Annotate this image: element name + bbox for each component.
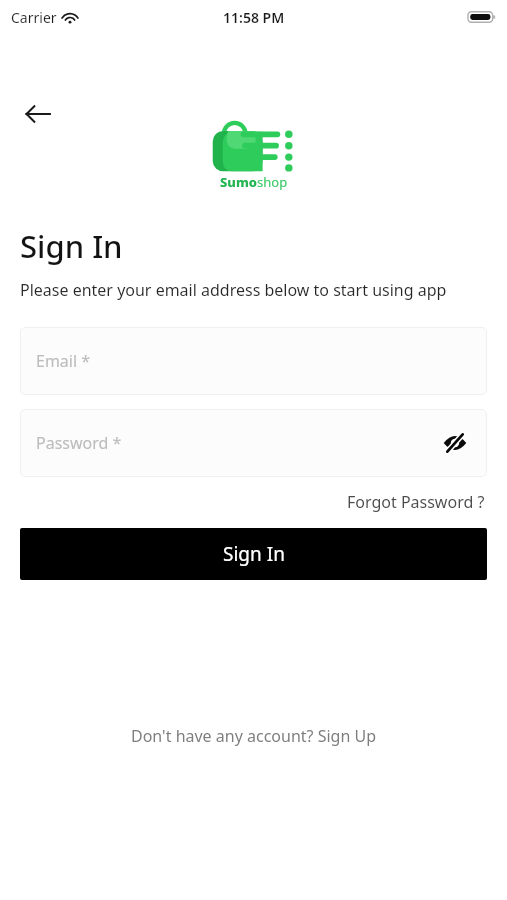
staticText: 11:58 PM [223,8,285,27]
staticText: Sign In [20,225,123,267]
button[interactable]: Show password [440,428,470,458]
button[interactable]: Sign In [20,528,487,580]
staticText: Don't have any account? Sign Up [131,725,376,747]
staticText: Carrier [11,8,57,27]
staticText: Email * [36,350,91,372]
staticText: Forgot Password ? [347,491,485,513]
button[interactable]: Email * [20,327,487,395]
staticText: shop [257,173,288,191]
button[interactable]: Back [18,94,58,134]
button[interactable]: Don't have any account? Sign Up [125,721,382,751]
staticText: Please enter your email address below to… [20,279,447,301]
button[interactable]: Password * [20,409,487,477]
button[interactable]: Forgot Password ? [345,488,487,516]
staticText: Sumo [220,173,257,191]
staticText: Sign In [223,541,285,567]
staticText: Password * [36,432,122,454]
